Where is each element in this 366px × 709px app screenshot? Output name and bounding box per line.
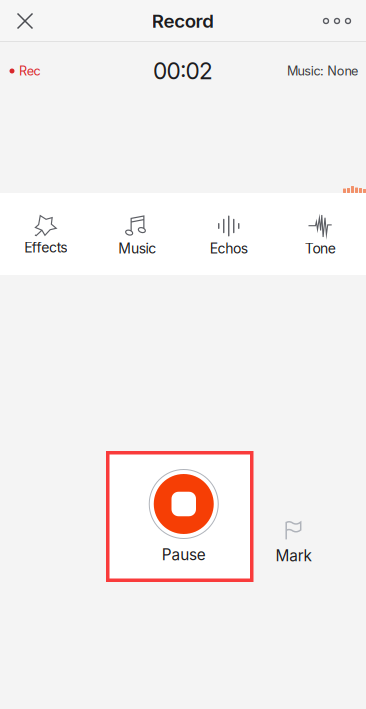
staticText: Music xyxy=(118,240,156,257)
staticText: Mark xyxy=(275,546,311,565)
staticText: Tone xyxy=(305,240,336,257)
button[interactable]: More options xyxy=(308,0,366,42)
staticText: Rec xyxy=(19,63,41,79)
staticText: Music: None xyxy=(287,63,358,79)
button[interactable]: Pause xyxy=(106,451,253,582)
button[interactable]: Echos xyxy=(183,193,274,275)
staticText: Record xyxy=(152,10,214,32)
button[interactable]: Close xyxy=(0,0,50,42)
staticText: 00:02 xyxy=(153,57,213,85)
button[interactable]: Music xyxy=(91,193,183,275)
staticText: Pause xyxy=(162,545,206,564)
staticText: Echos xyxy=(210,240,248,257)
button[interactable]: Mark xyxy=(253,451,333,582)
button[interactable]: Effects xyxy=(0,193,91,275)
button[interactable]: Tone xyxy=(274,193,366,275)
staticText: Effects xyxy=(24,239,67,256)
